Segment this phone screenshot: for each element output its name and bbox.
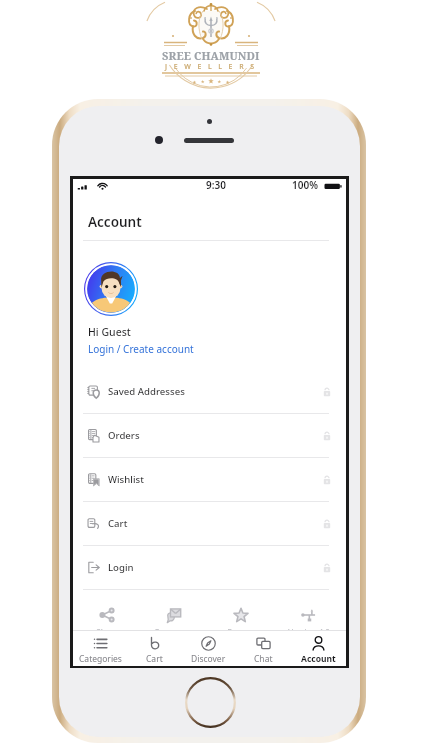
button[interactable]: Account <box>291 632 346 665</box>
staticText: Login / Create account <box>88 342 194 356</box>
staticText: Categories <box>79 653 122 665</box>
staticText: Account <box>301 653 336 665</box>
staticText: Cart <box>108 517 128 530</box>
button[interactable]: Login / Create account <box>88 342 194 356</box>
staticText: 9:30 <box>206 178 226 192</box>
staticText: J E W E L L E R S <box>165 62 257 72</box>
button[interactable]: Cart <box>73 502 346 546</box>
staticText: Hi Guest <box>88 325 131 339</box>
button[interactable]: Wishlist <box>73 458 346 502</box>
staticText: SREE CHAMUNDI <box>162 48 260 63</box>
button[interactable]: Share <box>73 604 140 630</box>
staticText: Cart <box>146 653 163 665</box>
button[interactable]: Version 4.0 <box>275 604 343 630</box>
button[interactable]: Categories <box>73 632 127 665</box>
button[interactable]: Saved Addresses <box>73 370 346 414</box>
staticText: Login <box>108 561 134 574</box>
button[interactable]: Discover <box>181 632 236 665</box>
button[interactable]: Login <box>73 546 346 590</box>
staticText: Account <box>88 213 142 231</box>
button[interactable]: Rate us <box>207 604 275 630</box>
staticText: Saved Addresses <box>108 385 185 398</box>
button[interactable]: Cart <box>127 632 181 665</box>
button[interactable]: Orders <box>73 414 346 458</box>
staticText: Contact us <box>154 627 194 630</box>
button[interactable]: Chat <box>236 632 291 665</box>
staticText: Wishlist <box>108 473 144 486</box>
staticText: Version 4.0 <box>288 627 330 630</box>
staticText: 100% <box>292 178 318 192</box>
staticText: Chat <box>254 653 273 665</box>
staticText: Discover <box>191 653 226 665</box>
staticText: Share <box>96 627 118 630</box>
staticText: Rate us <box>227 627 255 630</box>
staticText: Orders <box>108 429 140 442</box>
button[interactable]: Contact us <box>140 604 207 630</box>
